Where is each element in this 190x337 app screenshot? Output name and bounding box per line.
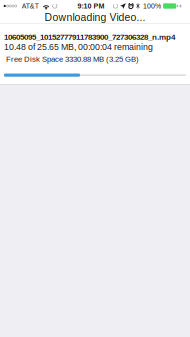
staticText: 100%	[143, 2, 161, 10]
staticText: Downloading Video...	[44, 12, 145, 23]
staticText: 10.48 of 25.65 MB, 00:00:04 remaining	[4, 42, 153, 52]
staticText: Free Disk Space 3330.88 MB (3.25 GB)	[6, 55, 139, 63]
staticText: 9:10 PM	[77, 2, 104, 10]
staticText: AT&T	[22, 2, 39, 10]
staticText: 10605095_10152777911783900_727306328_n.m…	[4, 32, 175, 41]
